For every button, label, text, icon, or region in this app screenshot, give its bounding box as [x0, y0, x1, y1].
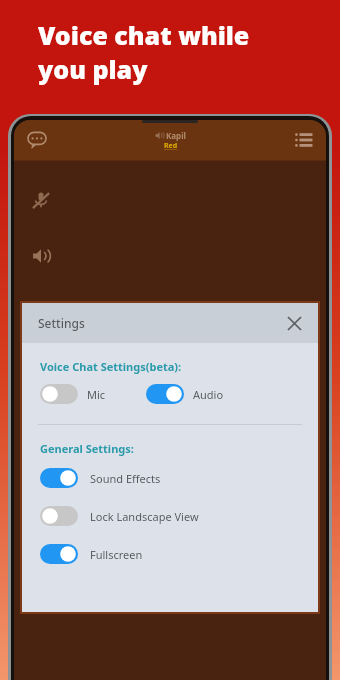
button[interactable]: Menu: [288, 124, 320, 156]
button[interactable]: Mic: [40, 384, 106, 404]
staticText: Voice Chat Settings(beta):: [40, 359, 182, 374]
staticText: you play: [38, 52, 148, 86]
staticText: Audio: [193, 387, 224, 402]
staticText: Red: [164, 141, 178, 151]
button[interactable]: Mute microphone: [26, 185, 56, 215]
button[interactable]: Volume: [26, 241, 56, 271]
staticText: Kapil: [166, 130, 186, 141]
staticText: Mic: [87, 387, 106, 402]
staticText: Lock Landscape View: [90, 509, 199, 524]
button[interactable]: Close: [280, 309, 308, 337]
staticText: General Settings:: [40, 441, 134, 456]
staticText: Fullscreen: [90, 547, 143, 562]
staticText: Sound Effects: [90, 471, 161, 486]
button[interactable]: Chat: [20, 123, 54, 157]
staticText: Voice chat while: [38, 18, 250, 52]
staticText: Settings: [38, 315, 85, 331]
button[interactable]: Audio: [146, 384, 224, 404]
button[interactable]: Lock Landscape View: [22, 506, 318, 526]
button[interactable]: Sound Effects: [22, 468, 318, 488]
button[interactable]: Fullscreen: [22, 544, 318, 564]
